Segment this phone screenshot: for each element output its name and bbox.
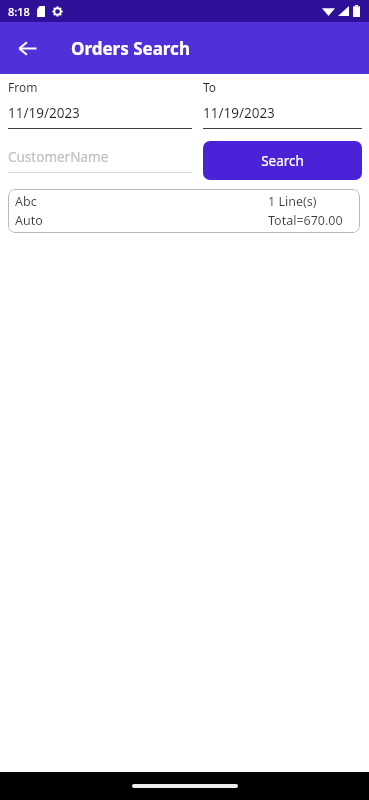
- staticText: CustomerName: [8, 148, 109, 166]
- button[interactable]: Search: [203, 141, 362, 180]
- staticText: 11/19/2023: [8, 104, 80, 122]
- staticText: From: [8, 79, 38, 95]
- staticText: 8:18: [8, 4, 30, 19]
- staticText: To: [203, 79, 217, 95]
- staticText: Search: [261, 152, 304, 170]
- staticText: 11/19/2023: [203, 104, 275, 122]
- button[interactable]: CustomerName: [8, 148, 192, 173]
- staticText: Total=670.00: [268, 212, 343, 229]
- staticText: Orders Search: [71, 37, 190, 60]
- button[interactable]: Back: [7, 28, 47, 68]
- staticText: Abc: [15, 193, 37, 210]
- button[interactable]: Abc: [8, 189, 360, 233]
- staticText: Auto: [15, 212, 43, 229]
- staticText: 1 Line(s): [268, 193, 317, 210]
